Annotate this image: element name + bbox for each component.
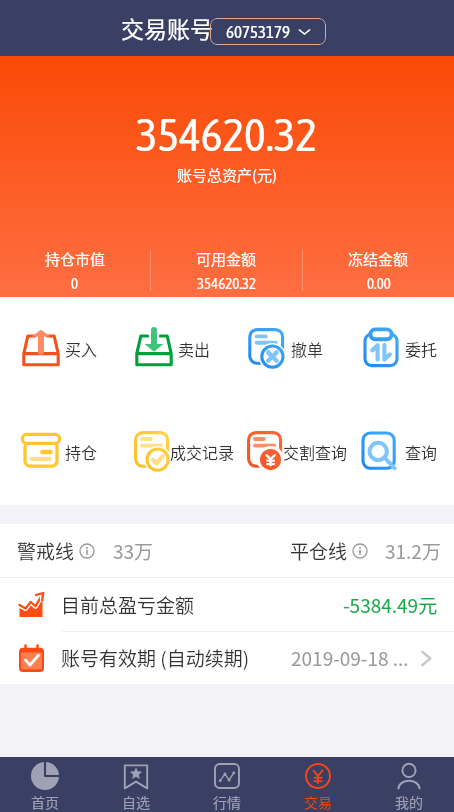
button[interactable]: 账号有效期 (自动续期) (0, 632, 454, 684)
staticText: 买入 (65, 337, 98, 360)
staticText: 目前总盈亏金额 (61, 591, 195, 619)
staticText: 卖出 (178, 337, 211, 360)
button[interactable]: 卖出 (113, 328, 226, 368)
staticText: 警戒线 (17, 537, 75, 565)
button[interactable]: Watchlist (90, 757, 181, 812)
button[interactable]: 委托 (340, 328, 454, 368)
button[interactable]: Trade (272, 757, 363, 812)
staticText: 交割查询 (283, 440, 348, 463)
staticText: 委托 (405, 337, 438, 360)
staticText: 成交记录 (170, 440, 235, 463)
button[interactable]: Home (0, 757, 90, 812)
button[interactable]: 60753179 (210, 18, 326, 45)
staticText: 查询 (405, 440, 438, 463)
button[interactable]: 查询 (340, 431, 454, 471)
staticText: 平仓线 (290, 537, 348, 565)
staticText: 0.00 (367, 275, 391, 292)
button[interactable]: 持仓 (0, 431, 113, 471)
other: Open (416, 648, 437, 669)
staticText: 可用金额 (196, 248, 257, 270)
button[interactable]: 买入 (0, 328, 113, 368)
staticText: 自选 (122, 792, 150, 812)
staticText: 我的 (395, 792, 423, 812)
staticText: 33万 (113, 537, 154, 565)
staticText: 60753179 (226, 22, 290, 41)
button[interactable]: 目前总盈亏金额 (0, 578, 454, 631)
button[interactable]: 交割查询 (226, 431, 340, 471)
staticText: 交易 (304, 792, 332, 812)
staticText: 撤单 (291, 337, 324, 360)
staticText: 冻结金额 (348, 248, 409, 270)
staticText: 首页 (31, 792, 59, 812)
button[interactable]: 成交记录 (113, 431, 226, 471)
button[interactable]: Profile (363, 757, 454, 812)
staticText: 持仓 (65, 440, 98, 463)
staticText: 354620.32 (136, 108, 318, 161)
staticText: 行情 (213, 792, 241, 812)
staticText: 31.2万 (385, 537, 441, 565)
button[interactable]: 撤单 (226, 328, 340, 368)
button[interactable]: Quotes (181, 757, 272, 812)
staticText: 持仓市值 (45, 248, 106, 270)
staticText: 交易账号 (121, 11, 213, 44)
staticText: 账号总资产(元) (177, 164, 278, 186)
staticText: 账号有效期 (自动续期) (61, 644, 250, 672)
staticText: 354620.32 (197, 275, 257, 292)
staticText: 2019-09-18 ... (291, 644, 409, 672)
staticText: 0 (71, 275, 79, 292)
staticText: -5384.49元 (343, 591, 438, 619)
